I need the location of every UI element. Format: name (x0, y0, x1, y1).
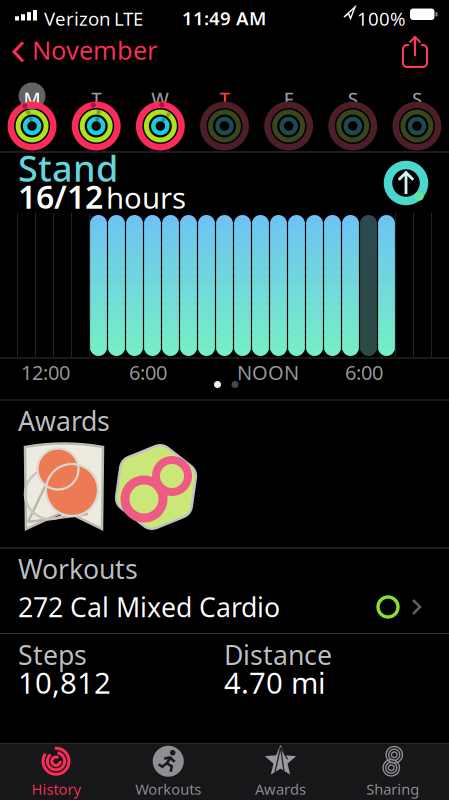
staticText: Steps (18, 637, 87, 672)
staticText: W (151, 86, 169, 111)
staticText: 6:00 (345, 359, 383, 386)
button[interactable]: Workouts (112, 745, 224, 799)
staticText: 100% (357, 6, 406, 31)
staticText: T (219, 86, 229, 111)
button[interactable]: T (64, 82, 128, 154)
staticText: LTE (114, 6, 143, 31)
staticText: Distance (224, 637, 332, 672)
staticText: S (412, 86, 422, 111)
staticText: Workouts (18, 551, 138, 586)
staticText: T (91, 86, 101, 111)
button[interactable]: Sharing (337, 745, 449, 799)
staticText: F (284, 86, 294, 111)
staticText: Awards (18, 403, 110, 438)
button[interactable]: Awards (224, 745, 336, 799)
button[interactable]: W (128, 82, 192, 154)
staticText: 4.70 mi (224, 663, 326, 702)
button[interactable]: Share (398, 34, 432, 70)
staticText: 6:00 (129, 359, 167, 386)
button[interactable]: F (257, 82, 321, 154)
button[interactable]: November (12, 33, 157, 67)
staticText: 272 Cal Mixed Cardio (18, 589, 280, 625)
staticText: 11:49 AM (182, 5, 266, 30)
staticText: Sharing (366, 779, 419, 799)
staticText: Verizon (44, 6, 111, 31)
button[interactable]: History (0, 745, 112, 799)
staticText: hours (106, 178, 186, 217)
button[interactable]: S (385, 82, 449, 154)
staticText: Awards (255, 779, 306, 799)
button[interactable]: T (192, 82, 256, 154)
button[interactable]: 272 Cal Mixed Cardio (18, 585, 423, 629)
button[interactable]: S (321, 82, 385, 154)
staticText: Workouts (135, 779, 201, 799)
staticText: History (31, 779, 80, 799)
staticText: S (348, 86, 358, 111)
staticText: Stand (18, 144, 118, 192)
staticText: November (32, 33, 157, 67)
staticText: M (24, 86, 41, 111)
staticText: 12:00 (21, 359, 70, 386)
staticText: 10,812 (18, 663, 111, 702)
staticText: NOON (237, 359, 299, 386)
button[interactable]: M (0, 82, 64, 154)
staticText: 16/12 (18, 175, 103, 217)
